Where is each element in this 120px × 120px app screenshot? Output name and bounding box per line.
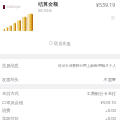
button[interactable]: 口罩及会销 xyxy=(2,100,116,105)
staticText: +0.00 xyxy=(105,116,116,120)
staticText: ¥539.19 xyxy=(96,1,116,8)
button[interactable]: App icon xyxy=(3,5,5,9)
staticText: 借记卡消费跨行网上购物(网银)1个人 xyxy=(57,63,116,68)
staticText: 小程序名称 xyxy=(6,5,21,9)
staticText: 实际付款 xyxy=(2,116,19,120)
staticText: +0.00 xyxy=(105,108,116,113)
staticText: 不需要 xyxy=(103,77,116,82)
button[interactable]: 交易信息 xyxy=(2,63,116,68)
staticText: 结算金额 xyxy=(38,1,58,7)
button[interactable]: 发票抬头 xyxy=(2,77,116,82)
staticText: 口罩及会销 xyxy=(2,100,23,105)
button[interactable]: 支付方式 xyxy=(2,91,116,96)
staticText: 至 xyxy=(111,15,115,20)
staticText: 联系客服 xyxy=(54,41,71,46)
staticText: ¥539.10 xyxy=(100,100,116,105)
staticText: 消费 xyxy=(2,108,11,113)
button[interactable]: 联系客服 xyxy=(49,39,71,47)
staticText: 支付方式 xyxy=(2,91,19,96)
staticText: 88.50元 xyxy=(38,8,53,13)
button[interactable]: 实际付款 xyxy=(2,116,116,120)
staticText: 工商银行卡支付 xyxy=(86,91,116,96)
button[interactable]: 消费 xyxy=(2,108,116,113)
staticText: 交易信息 xyxy=(2,63,19,68)
staticText: 发票抬头 xyxy=(2,77,19,82)
